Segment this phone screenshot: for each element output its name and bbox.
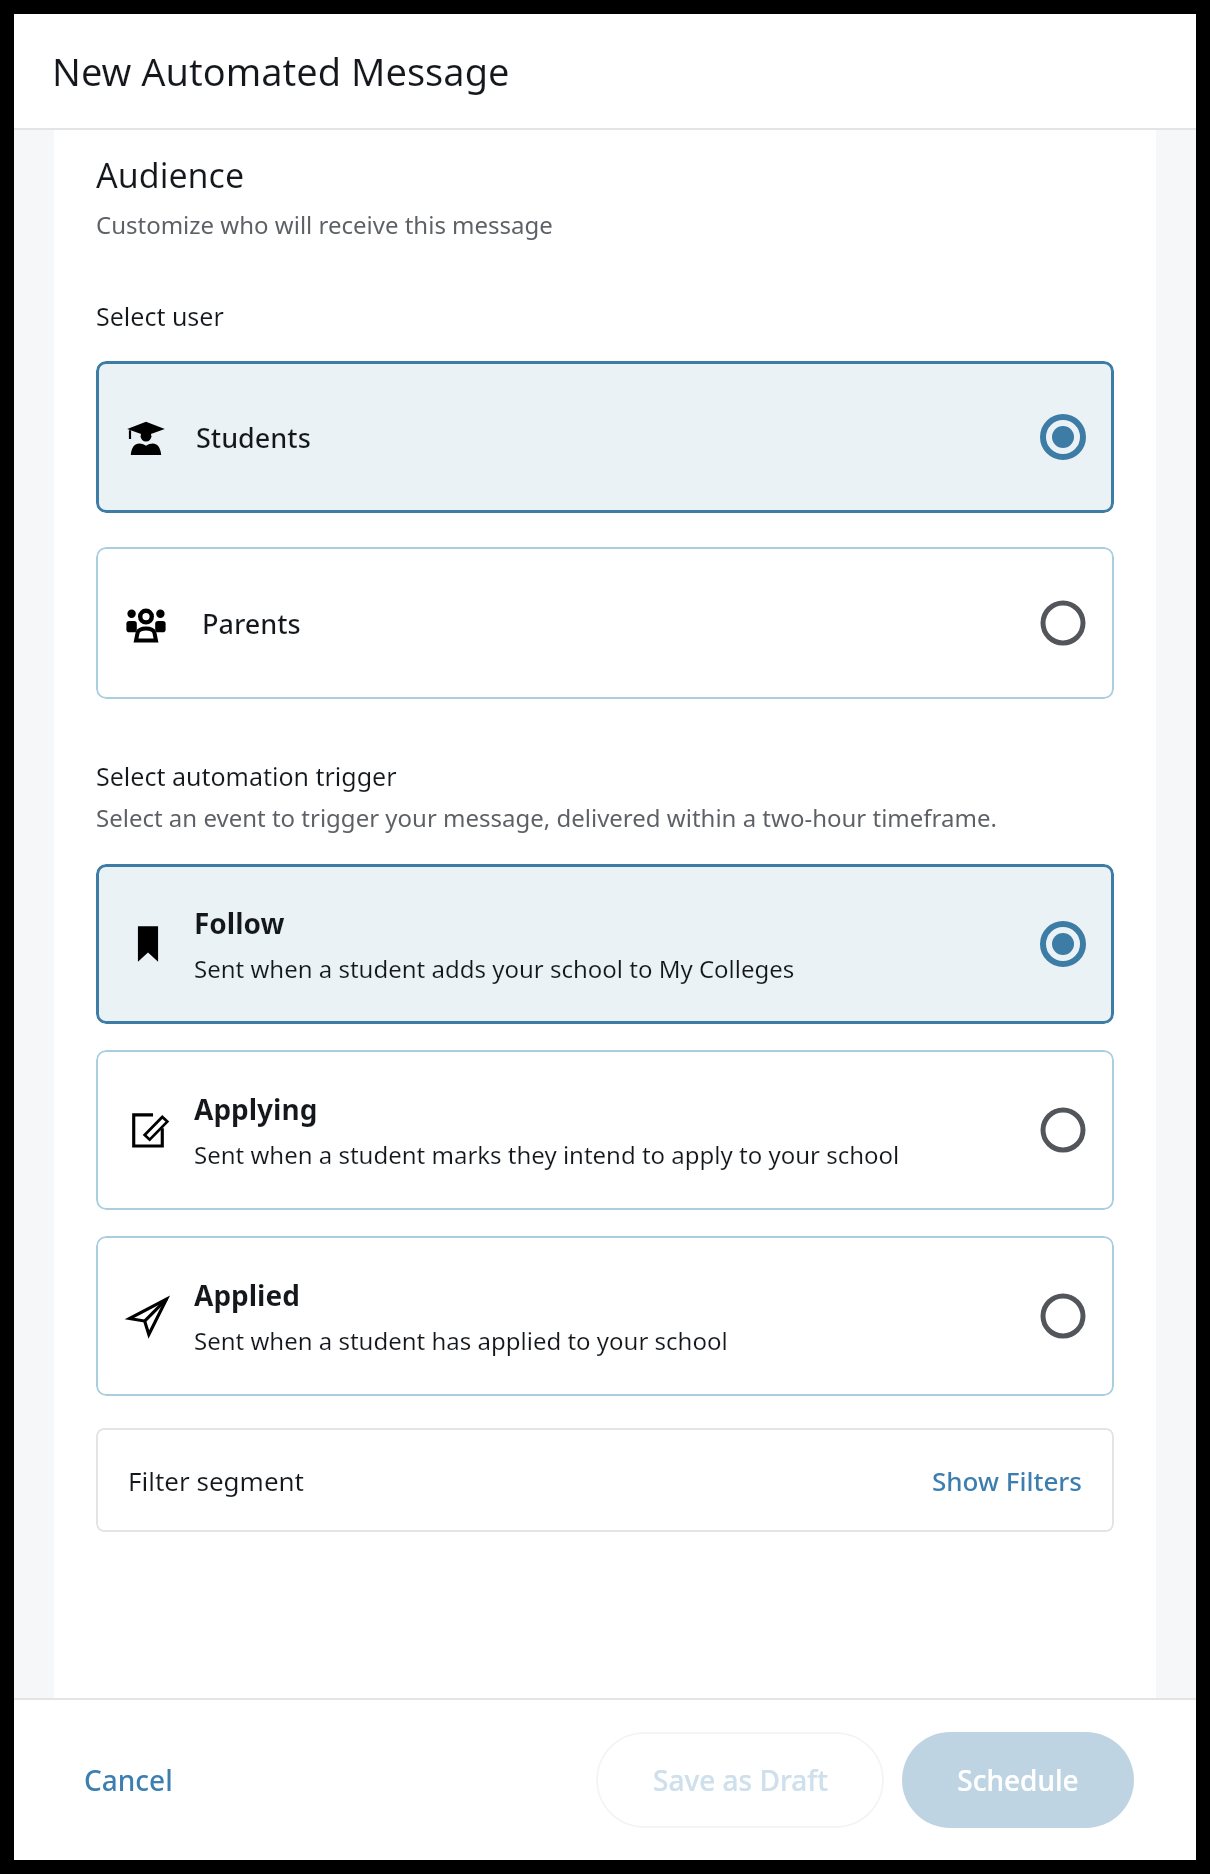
staticText: Select user bbox=[96, 299, 224, 333]
staticText: New Automated Message bbox=[52, 45, 510, 97]
staticText: Schedule bbox=[957, 1761, 1079, 1799]
staticText: Select automation trigger bbox=[96, 759, 397, 793]
staticText: Audience bbox=[96, 152, 245, 198]
staticText: Students bbox=[196, 419, 311, 456]
staticText: Customize who will receive this message bbox=[96, 208, 553, 241]
staticText: Sent when a student adds your school to … bbox=[194, 952, 795, 985]
staticText: Cancel bbox=[84, 1761, 173, 1799]
staticText: Applied bbox=[194, 1276, 300, 1314]
staticText: Sent when a student has applied to your … bbox=[194, 1324, 728, 1357]
button[interactable]: Applying bbox=[96, 1050, 1114, 1210]
button[interactable]: Parents bbox=[96, 547, 1114, 699]
staticText: Follow bbox=[194, 904, 285, 942]
button[interactable]: Applied bbox=[96, 1236, 1114, 1396]
button[interactable]: Save as Draft bbox=[596, 1732, 884, 1828]
button[interactable]: Follow bbox=[96, 864, 1114, 1024]
staticText: Select an event to trigger your message,… bbox=[96, 801, 997, 834]
staticText: Save as Draft bbox=[653, 1761, 828, 1799]
staticText: Sent when a student marks they intend to… bbox=[194, 1138, 900, 1171]
button[interactable]: Schedule bbox=[902, 1732, 1134, 1828]
button[interactable]: Students bbox=[96, 361, 1114, 513]
button[interactable]: Cancel bbox=[76, 1751, 181, 1809]
staticText: Parents bbox=[202, 605, 301, 642]
button[interactable]: Filter segment bbox=[96, 1428, 1114, 1532]
staticText: Applying bbox=[194, 1090, 318, 1128]
staticText: Show Filters bbox=[932, 1463, 1082, 1498]
staticText: Filter segment bbox=[128, 1463, 304, 1498]
